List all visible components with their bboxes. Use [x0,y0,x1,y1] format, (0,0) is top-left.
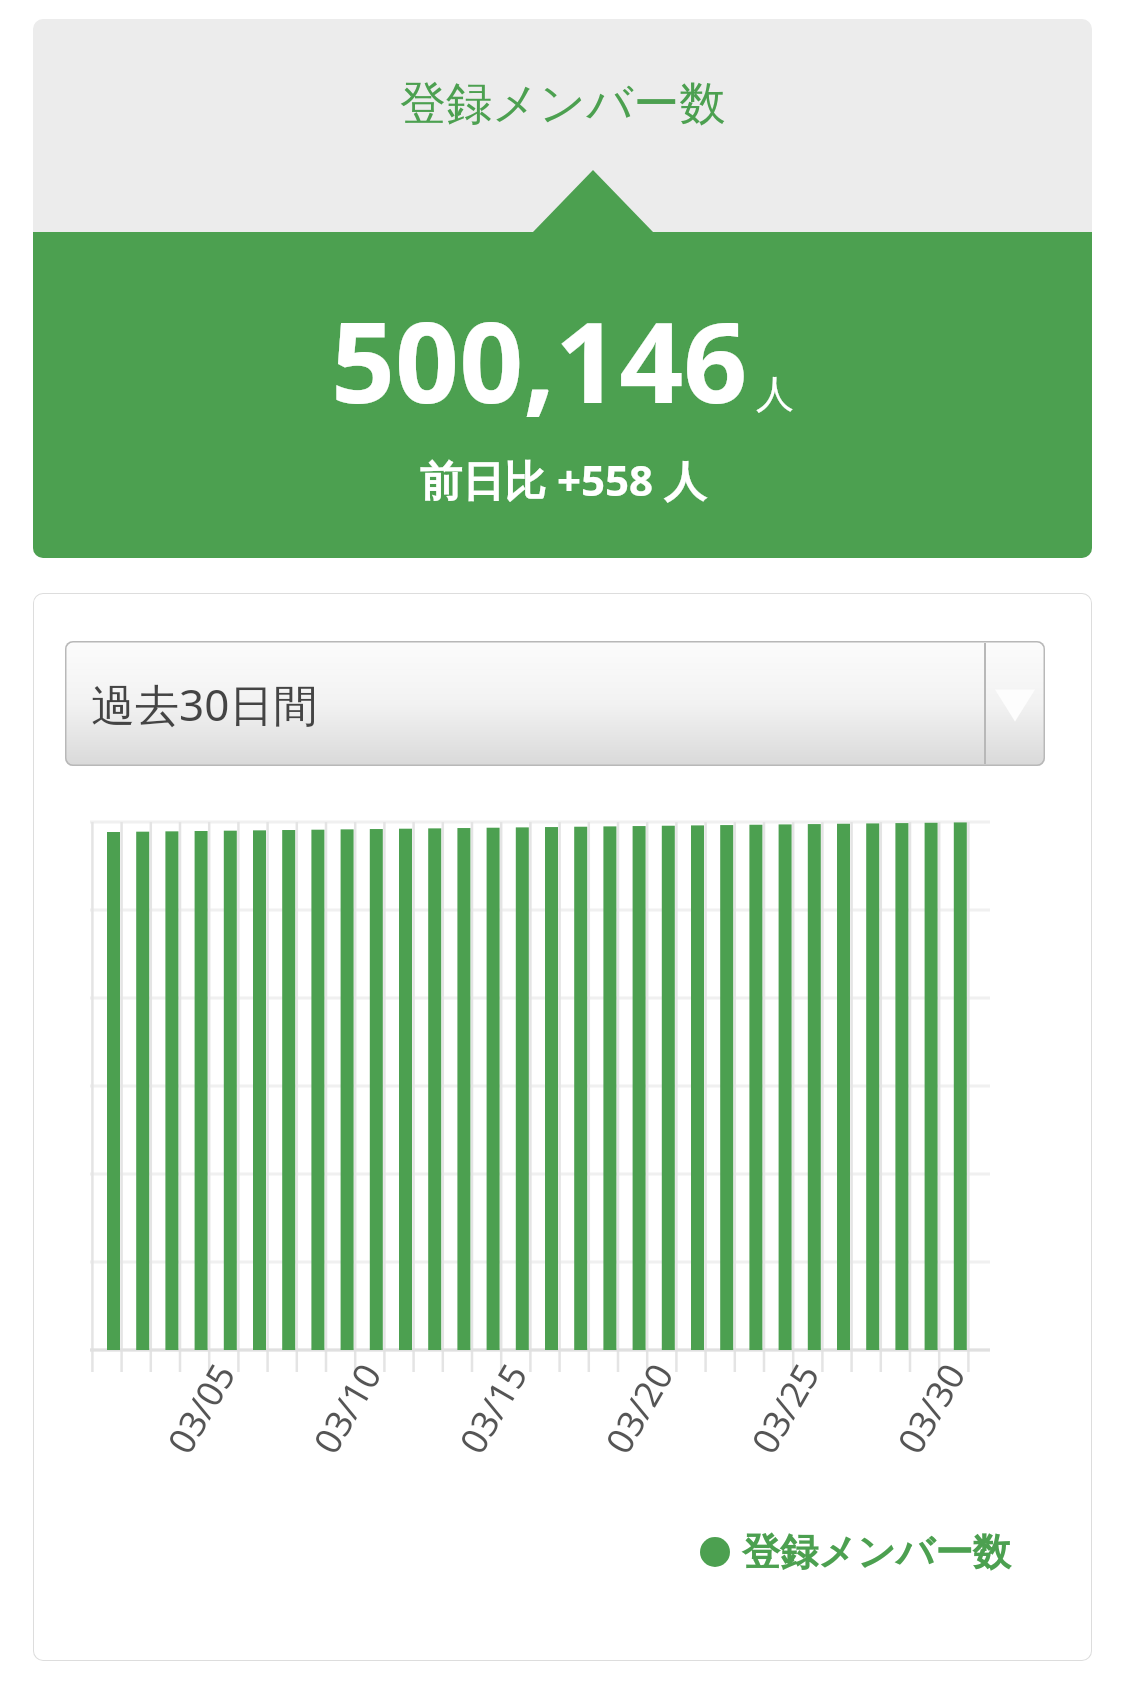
staticText: 前日比 +558 人 [420,451,706,508]
staticText: 人 [756,370,794,418]
staticText: 登録メンバー数 [742,1528,1011,1576]
button[interactable]: 登録メンバー数 [700,1528,1011,1576]
staticText: 500,146 [331,283,748,436]
button[interactable]: 登録メンバー数 [33,19,1092,558]
button[interactable]: 過去30日間 [65,641,1045,766]
staticText: 過去30日間 [91,674,318,734]
staticText: 登録メンバー数 [400,75,726,133]
